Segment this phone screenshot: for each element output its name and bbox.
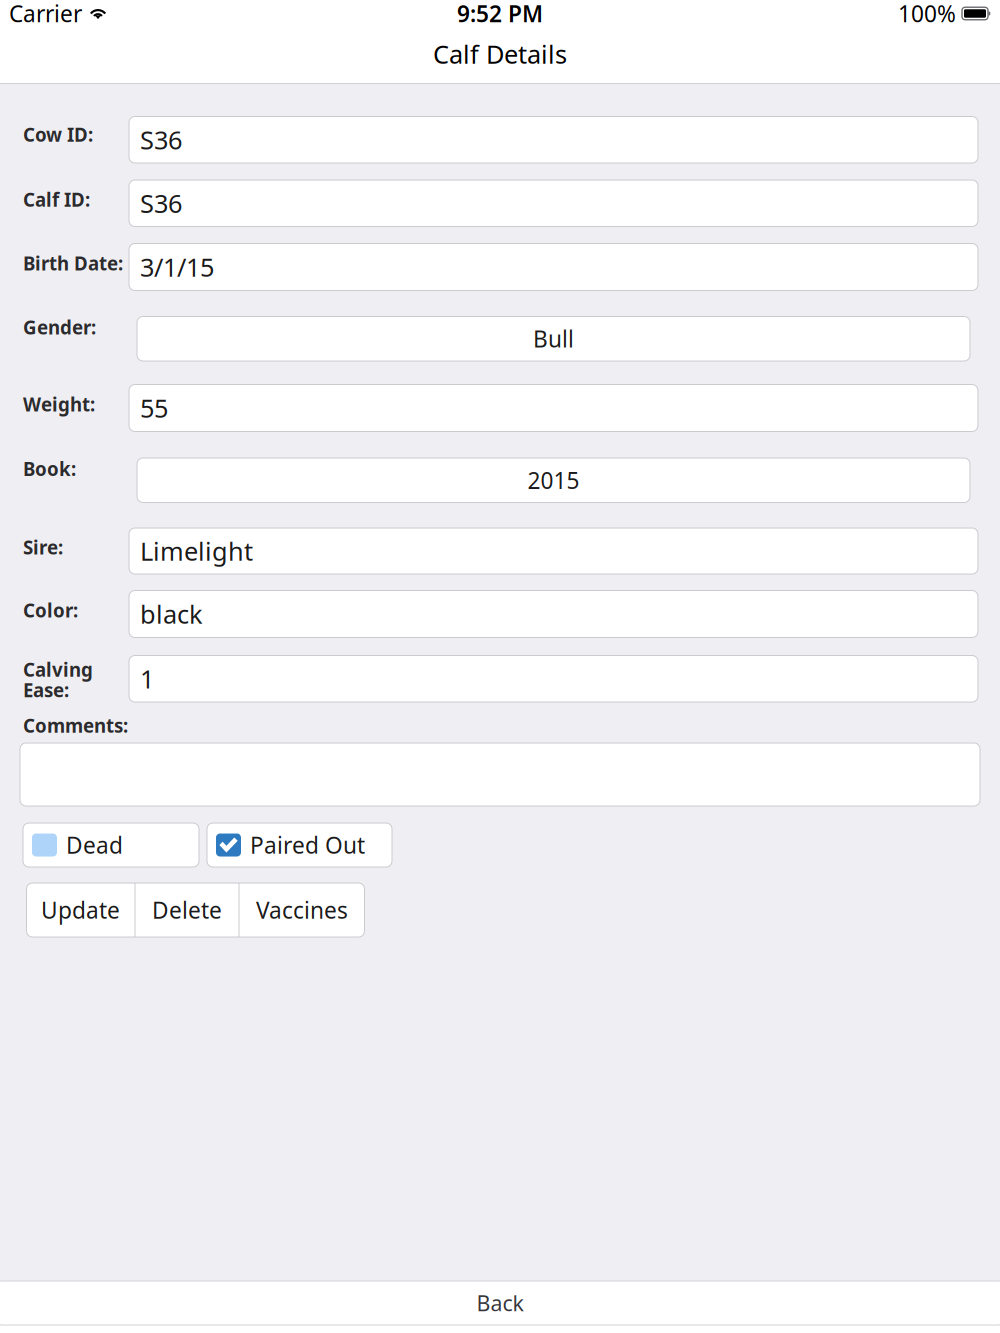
staticText: Gender: bbox=[23, 315, 96, 340]
staticText: 100% bbox=[898, 0, 956, 28]
staticText: Paired Out bbox=[250, 830, 365, 860]
staticText: Birth Date: bbox=[23, 251, 123, 276]
staticText: Calf ID: bbox=[23, 187, 90, 212]
staticText: 3/1/15 bbox=[140, 250, 214, 284]
staticText: Vaccines bbox=[256, 895, 348, 925]
button[interactable]: Update bbox=[26, 883, 134, 937]
button[interactable]: Delete bbox=[135, 883, 238, 937]
staticText: 1 bbox=[140, 662, 154, 695]
staticText: 2015 bbox=[527, 465, 579, 495]
staticText: Calf Details bbox=[433, 37, 567, 71]
staticText: Back bbox=[476, 1289, 523, 1317]
staticText: Dead bbox=[66, 830, 123, 860]
staticText: Delete bbox=[152, 895, 222, 925]
staticText: Limelight bbox=[140, 534, 253, 568]
staticText: Comments: bbox=[23, 713, 128, 738]
button[interactable]: Vaccines bbox=[239, 883, 364, 937]
button[interactable]: Back bbox=[0, 1281, 1000, 1325]
staticText: S36 bbox=[140, 123, 182, 156]
staticText: S36 bbox=[140, 186, 182, 220]
staticText: Ease: bbox=[23, 677, 69, 702]
staticText: Sire: bbox=[23, 535, 63, 560]
staticText: Bull bbox=[533, 324, 574, 354]
staticText: Book: bbox=[23, 456, 76, 481]
staticText: Cow ID: bbox=[23, 122, 93, 147]
staticText: Weight: bbox=[23, 392, 95, 417]
staticText: Color: bbox=[23, 598, 78, 623]
button[interactable]: Dead bbox=[23, 823, 199, 867]
staticText: Update bbox=[41, 895, 120, 925]
staticText: black bbox=[140, 597, 203, 631]
staticText: Carrier bbox=[9, 0, 82, 28]
staticText: 9:52 PM bbox=[457, 0, 543, 28]
button[interactable]: Paired Out bbox=[207, 823, 392, 867]
staticText: 55 bbox=[140, 391, 168, 425]
staticText: Calving bbox=[23, 657, 93, 682]
